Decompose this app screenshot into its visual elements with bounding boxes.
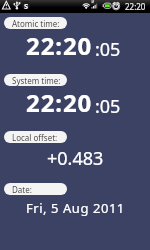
other: Skype notification — [22, 1, 30, 9]
staticText: 22:20 — [125, 1, 146, 12]
staticText: :05 — [95, 37, 121, 62]
staticText: Local offset: — [12, 132, 58, 143]
staticText: 22:20 — [26, 86, 93, 119]
button[interactable]: +0.483 — [0, 146, 150, 171]
staticText: Atomic time: — [12, 18, 60, 29]
button[interactable]: Date: — [4, 183, 67, 195]
other: Status icons — [0, 0, 150, 13]
staticText: Fri, 5 Aug 2011 — [26, 199, 125, 217]
button[interactable]: 22:20 — [0, 86, 147, 119]
staticText: +0.483 — [47, 146, 104, 171]
staticText: System time: — [12, 75, 61, 86]
button[interactable]: Atomic time: — [4, 17, 67, 29]
staticText: 22:20 — [26, 29, 93, 62]
staticText: :05 — [95, 94, 121, 119]
staticText: S — [24, 1, 29, 9]
button[interactable]: 22:20 — [0, 29, 147, 62]
button[interactable]: System time: — [4, 74, 67, 86]
button[interactable]: Fri, 5 Aug 2011 — [0, 199, 150, 217]
button[interactable]: Local offset: — [4, 131, 67, 143]
other: Status bar — [0, 0, 150, 13]
staticText: Date: — [12, 184, 32, 195]
